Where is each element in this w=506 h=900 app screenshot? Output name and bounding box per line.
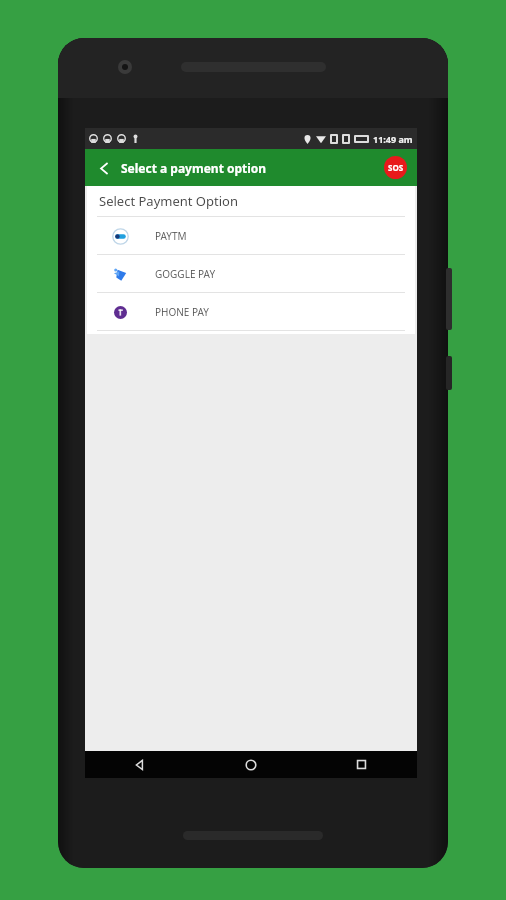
- staticText: Select Payment Option: [99, 192, 238, 210]
- button[interactable]: SOS emergency: [384, 156, 407, 179]
- staticText: PHONE PAY: [155, 305, 210, 319]
- staticText: GOGGLE PAY: [155, 267, 216, 281]
- button[interactable]: Back: [91, 155, 117, 181]
- staticText: Select a payment option: [121, 160, 267, 176]
- staticText: PAYTM: [155, 229, 187, 243]
- staticText: 11:49 am: [373, 133, 413, 145]
- button[interactable]: Back: [85, 751, 195, 778]
- button[interactable]: PAYTM: [87, 217, 415, 254]
- button[interactable]: PHONE PAY: [87, 293, 415, 330]
- button[interactable]: GOGGLE PAY: [87, 255, 415, 292]
- staticText: SOS: [388, 162, 404, 173]
- button[interactable]: Recent apps: [306, 751, 417, 778]
- button[interactable]: Home: [195, 751, 306, 778]
